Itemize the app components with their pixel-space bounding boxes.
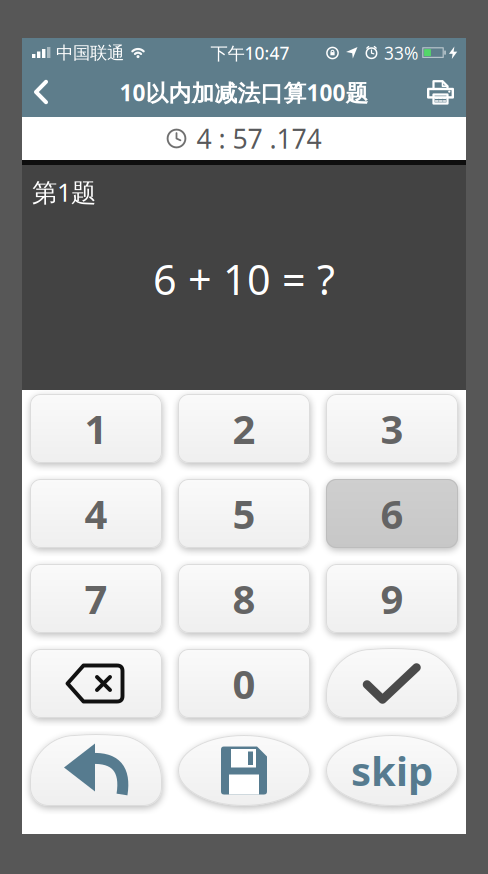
button[interactable] xyxy=(30,735,162,806)
staticText: 7 xyxy=(84,572,107,625)
button[interactable]: 7 xyxy=(30,564,162,633)
staticText: 下午10:47 xyxy=(210,41,289,64)
button[interactable] xyxy=(427,80,466,105)
button[interactable]: 5 xyxy=(178,479,310,548)
button[interactable] xyxy=(178,735,310,806)
staticText: 8 xyxy=(232,572,255,625)
staticText: 4 : 57 .174 xyxy=(196,121,321,156)
staticText: 0 xyxy=(232,657,255,710)
button[interactable]: 9 xyxy=(326,564,458,633)
staticText: 第1题 xyxy=(32,175,96,209)
button[interactable]: 4 xyxy=(30,479,162,548)
button[interactable] xyxy=(22,80,49,105)
button[interactable] xyxy=(30,649,162,718)
staticText: 中国联通 xyxy=(56,42,124,64)
button[interactable]: 8 xyxy=(178,564,310,633)
button[interactable]: 6 xyxy=(326,479,458,548)
staticText: skip xyxy=(351,744,433,797)
button[interactable]: skip xyxy=(326,735,458,806)
staticText: 2 xyxy=(232,402,255,455)
button[interactable]: 0 xyxy=(178,649,310,718)
button[interactable]: 1 xyxy=(30,394,162,463)
button[interactable]: 3 xyxy=(326,394,458,463)
staticText: 4 xyxy=(84,487,107,540)
staticText: 6 xyxy=(380,487,403,540)
button[interactable] xyxy=(326,649,458,718)
staticText: 5 xyxy=(232,487,255,540)
button[interactable]: 2 xyxy=(178,394,310,463)
staticText: 33% xyxy=(384,41,418,64)
staticText: 6 + 10 = ? xyxy=(153,252,335,306)
staticText: 1 xyxy=(84,402,107,455)
staticText: 9 xyxy=(380,572,403,625)
staticText: 3 xyxy=(380,402,403,455)
staticText: 10以内加减法口算100题 xyxy=(119,77,368,107)
